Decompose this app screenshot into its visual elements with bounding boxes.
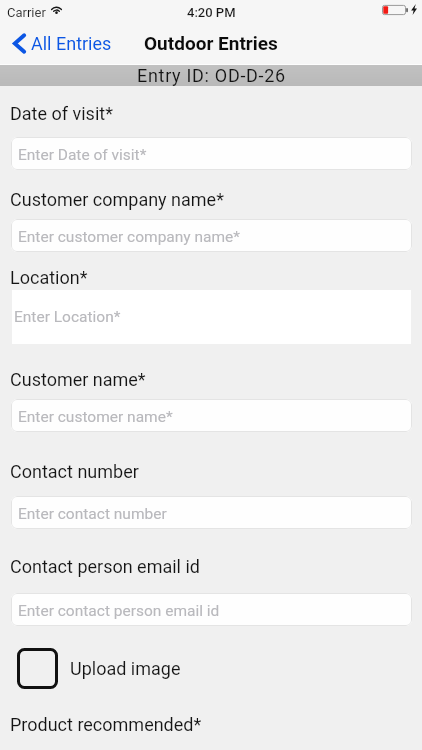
staticText: Contact number: [10, 461, 139, 482]
other: Battery charging: [382, 5, 409, 15]
staticText: Customer name*: [10, 369, 146, 390]
button[interactable]: Enter Date of visit*: [11, 137, 412, 170]
button[interactable]: Enter contact person email id: [11, 593, 412, 626]
button[interactable]: Enter customer company name*: [11, 219, 412, 252]
other: Wi-Fi: [51, 6, 62, 14]
staticText: Enter contact person email id: [18, 602, 220, 620]
staticText: Outdoor Entries: [144, 32, 278, 54]
staticText: Carrier: [7, 5, 46, 20]
button[interactable]: Enter contact number: [11, 496, 412, 529]
staticText: Contact person email id: [10, 556, 200, 577]
staticText: Entry ID: OD-D-26: [137, 65, 286, 86]
staticText: Enter Location*: [14, 308, 121, 326]
staticText: Enter Date of visit*: [18, 146, 147, 164]
staticText: Location*: [10, 267, 88, 288]
button[interactable]: Enter customer name*: [11, 399, 412, 432]
button[interactable]: All Entries: [13, 24, 112, 62]
staticText: Date of visit*: [10, 103, 113, 124]
staticText: Enter customer name*: [18, 408, 173, 426]
staticText: Upload image: [70, 658, 181, 679]
staticText: Customer company name*: [10, 189, 224, 210]
staticText: 4:20 PM: [187, 5, 236, 20]
staticText: Enter contact number: [18, 505, 167, 523]
button[interactable]: Enter Location*: [12, 290, 411, 344]
button[interactable]: Upload image: [17, 648, 181, 689]
staticText: All Entries: [31, 33, 112, 54]
staticText: Enter customer company name*: [18, 228, 240, 246]
staticText: Product recommended*: [10, 714, 202, 735]
